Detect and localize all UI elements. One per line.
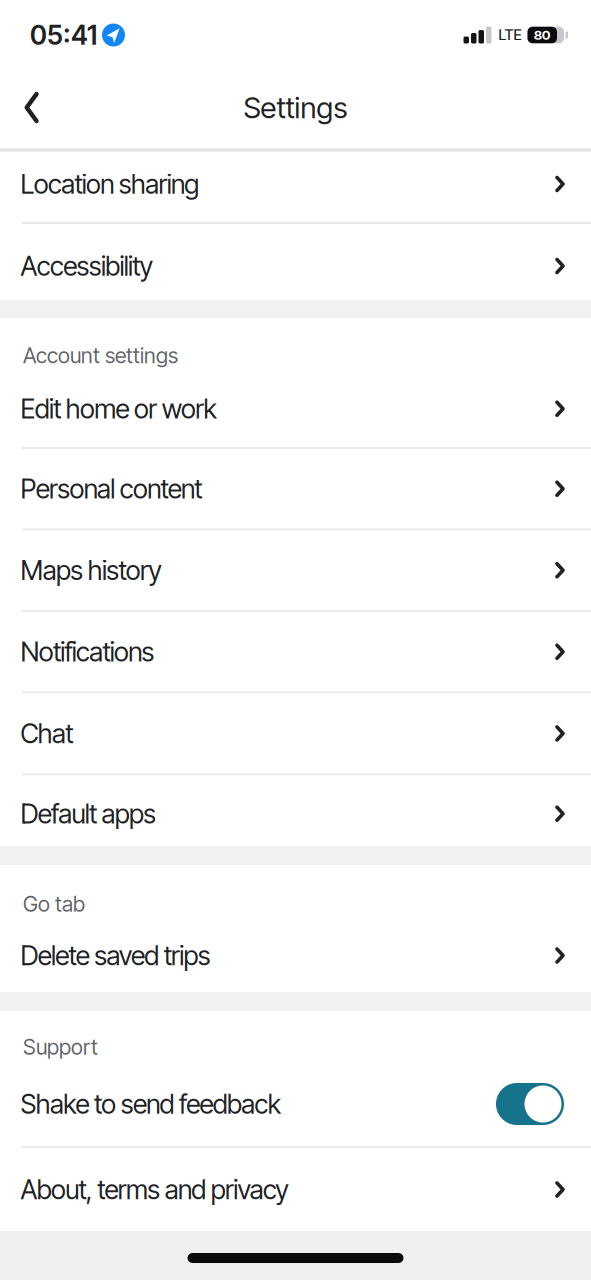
staticText: Chat (20, 718, 73, 749)
staticText: Location sharing (20, 168, 199, 200)
button[interactable]: Default apps (0, 775, 591, 846)
staticText: 05:41 (30, 19, 97, 51)
staticText: Account settings (23, 343, 178, 368)
button[interactable]: Back (11, 83, 51, 131)
button[interactable]: Location sharing (0, 152, 591, 222)
staticText: Default apps (20, 798, 156, 829)
staticText: Notifications (20, 636, 154, 667)
staticText: Support (23, 1034, 98, 1060)
staticText: 80 (534, 27, 551, 43)
button[interactable]: Notifications (0, 612, 591, 691)
button[interactable]: Shake to send feedback (496, 1083, 564, 1125)
button[interactable]: About, terms and privacy (0, 1148, 591, 1231)
button[interactable]: Edit home or work (0, 370, 591, 447)
staticText: Go tab (23, 891, 85, 917)
staticText: Shake to send feedback (20, 1088, 281, 1120)
button[interactable]: Personal content (0, 449, 591, 528)
staticText: Accessibility (20, 250, 153, 282)
staticText: LTE (498, 26, 521, 44)
button[interactable]: Maps history (0, 530, 591, 610)
button[interactable]: Delete saved trips (0, 919, 591, 992)
button[interactable]: Accessibility (0, 224, 591, 300)
staticText: Personal content (20, 473, 202, 504)
staticText: Delete saved trips (20, 940, 211, 971)
staticText: Settings (243, 90, 347, 125)
staticText: Maps history (20, 554, 162, 586)
staticText: About, terms and privacy (20, 1174, 289, 1205)
staticText: Edit home or work (20, 393, 216, 424)
button[interactable]: Chat (0, 693, 591, 773)
